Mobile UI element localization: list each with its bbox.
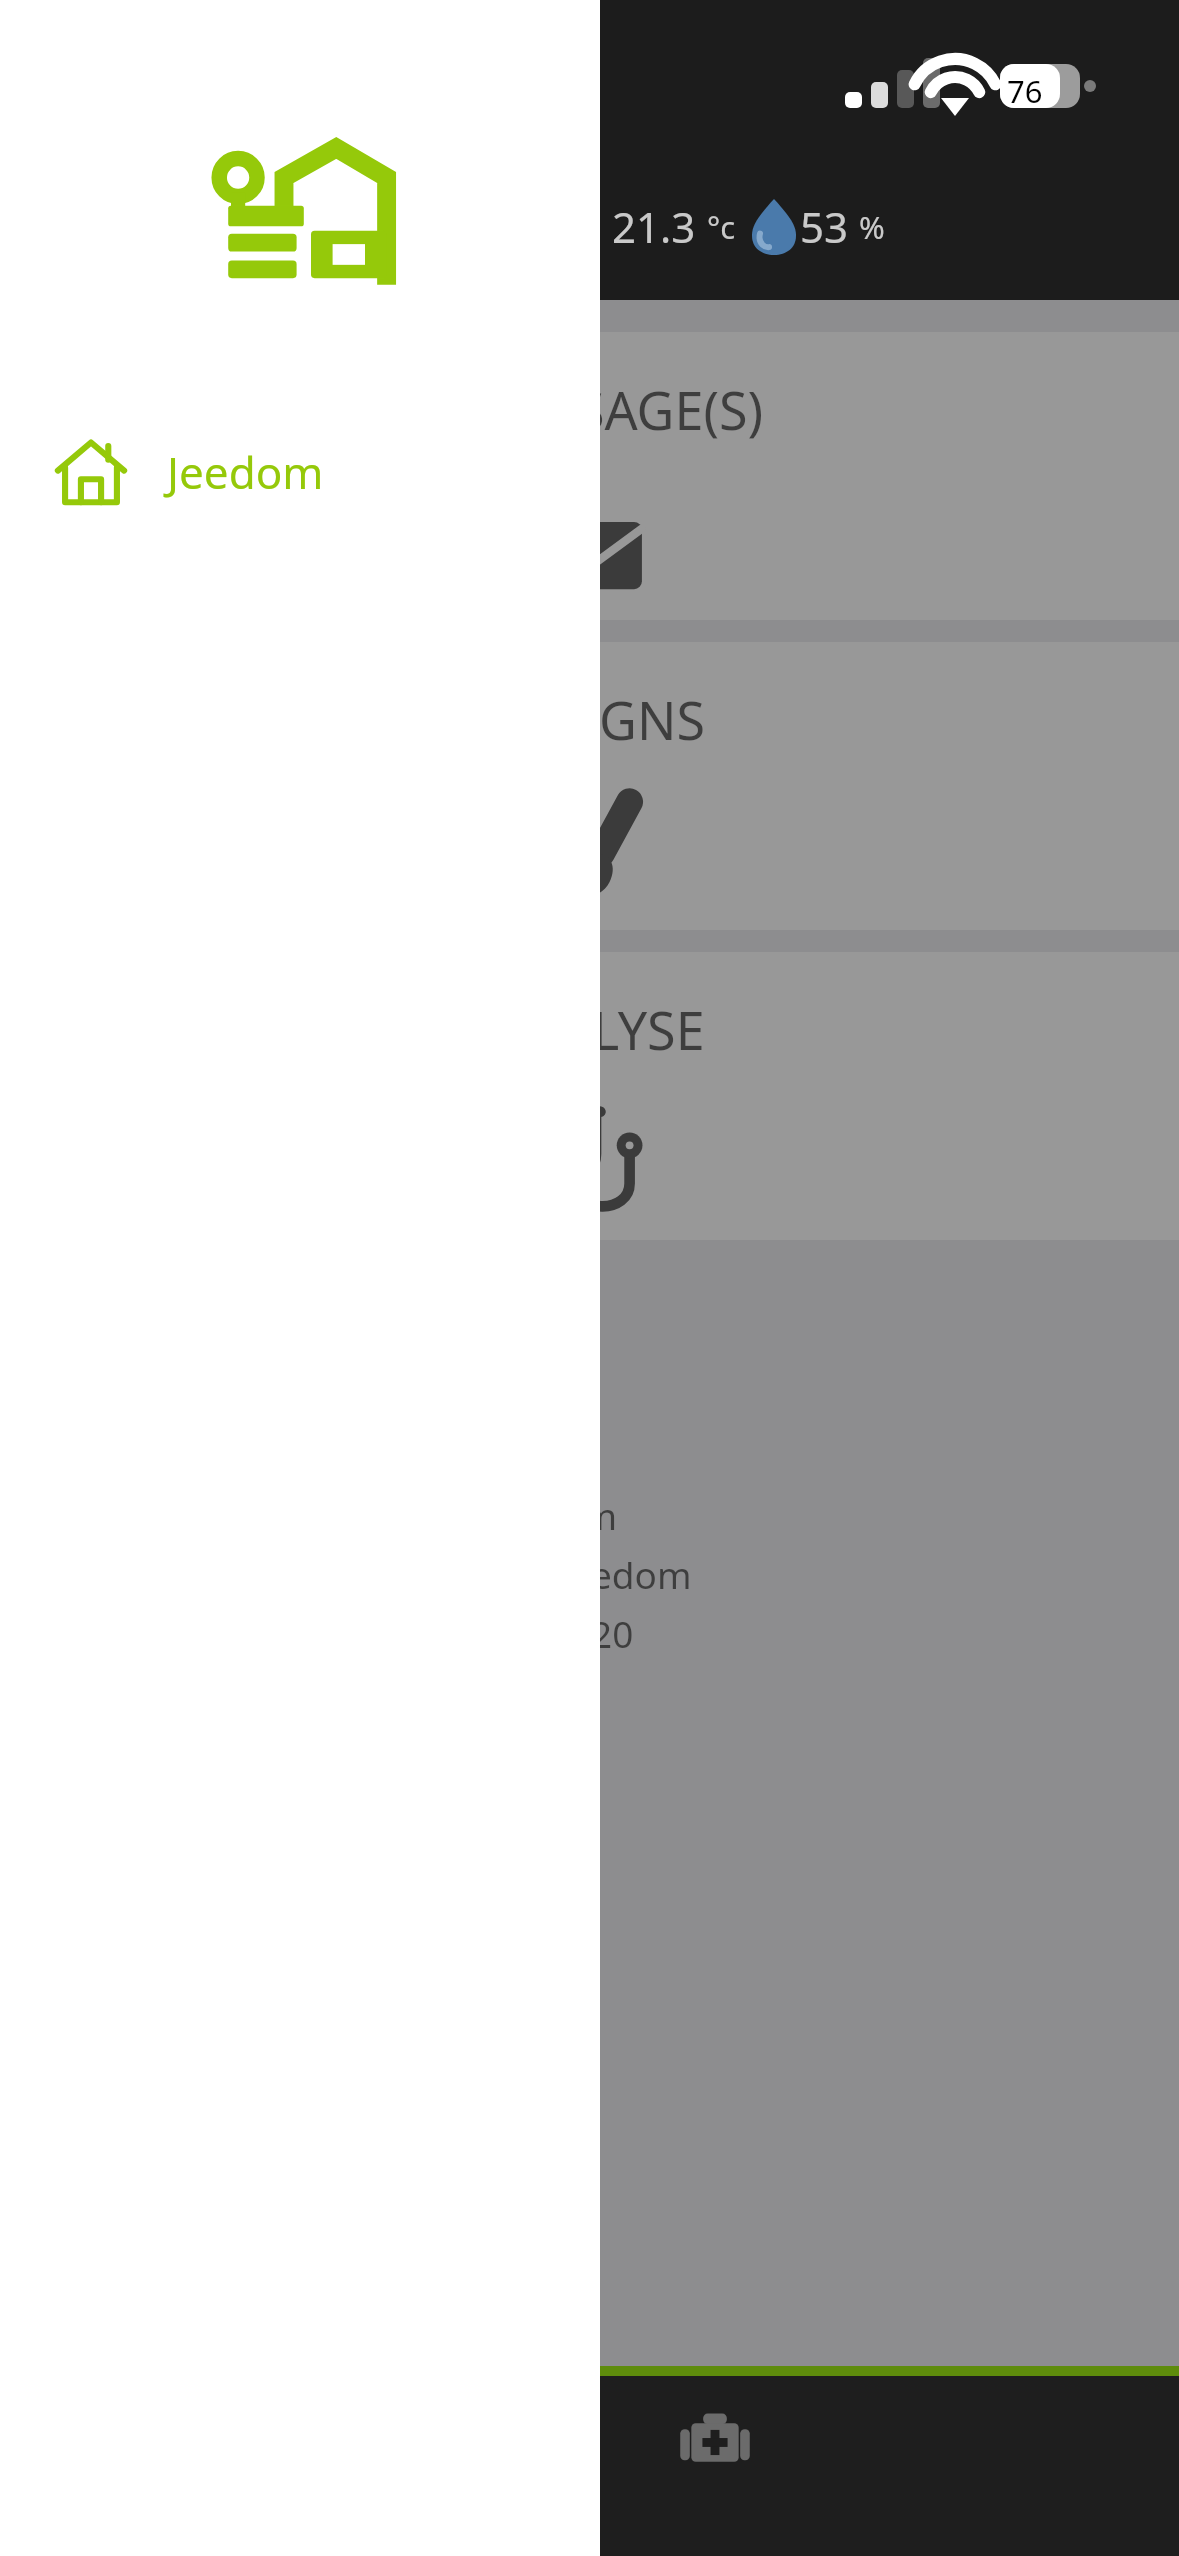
button[interactable]: Health [250, 2376, 1179, 2556]
staticText: °c [707, 206, 736, 248]
button[interactable]: Jeedom [0, 422, 600, 522]
staticText: Jeedom [167, 442, 324, 502]
button[interactable]: ANALYSE [12, 952, 1179, 1240]
staticText: ANALYSE [486, 994, 705, 1065]
staticText: 4.20 [560, 1608, 634, 1658]
staticText: 76 [1007, 70, 1043, 112]
staticText: Jeedom [560, 1549, 692, 1599]
button[interactable]: 0 MESSAGE(S) [12, 332, 1179, 620]
staticText: 21.3 [612, 198, 707, 255]
staticText: 53 [800, 198, 859, 255]
staticText: 0 MESSAGE(S) [428, 374, 764, 445]
staticText: DESIGNS [486, 684, 705, 755]
button[interactable]: DESIGNS [12, 642, 1179, 930]
staticText: % [859, 206, 885, 248]
staticText: om [560, 1490, 617, 1540]
